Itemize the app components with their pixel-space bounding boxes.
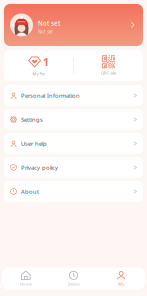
staticText: Privacy policy bbox=[21, 164, 58, 171]
button[interactable]: Privacy policy bbox=[4, 157, 143, 178]
button[interactable]: Personal Information bbox=[4, 85, 143, 106]
staticText: Not set bbox=[38, 19, 60, 28]
button[interactable]: Settings bbox=[4, 109, 143, 130]
staticText: Not set bbox=[38, 29, 53, 35]
staticText: User help bbox=[21, 140, 47, 147]
button[interactable]: User help bbox=[4, 133, 143, 154]
button[interactable]: My bbox=[97, 267, 145, 289]
button[interactable]: Device bbox=[50, 267, 97, 289]
button[interactable]: About bbox=[4, 181, 143, 202]
button[interactable]: Home bbox=[2, 267, 50, 289]
staticText: Personal Information bbox=[21, 92, 80, 99]
staticText: QR Code bbox=[101, 70, 116, 76]
staticText: About bbox=[21, 188, 39, 195]
button[interactable]: Not set bbox=[4, 4, 143, 46]
staticText: Home bbox=[20, 281, 32, 287]
staticText: Settings bbox=[21, 116, 43, 123]
staticText: My Pet bbox=[33, 71, 45, 76]
staticText: Device bbox=[67, 281, 79, 287]
staticText: My bbox=[118, 281, 124, 287]
button[interactable]: QR Code bbox=[74, 50, 143, 81]
staticText: 1 bbox=[43, 54, 49, 69]
button[interactable]: 1 bbox=[4, 50, 73, 81]
